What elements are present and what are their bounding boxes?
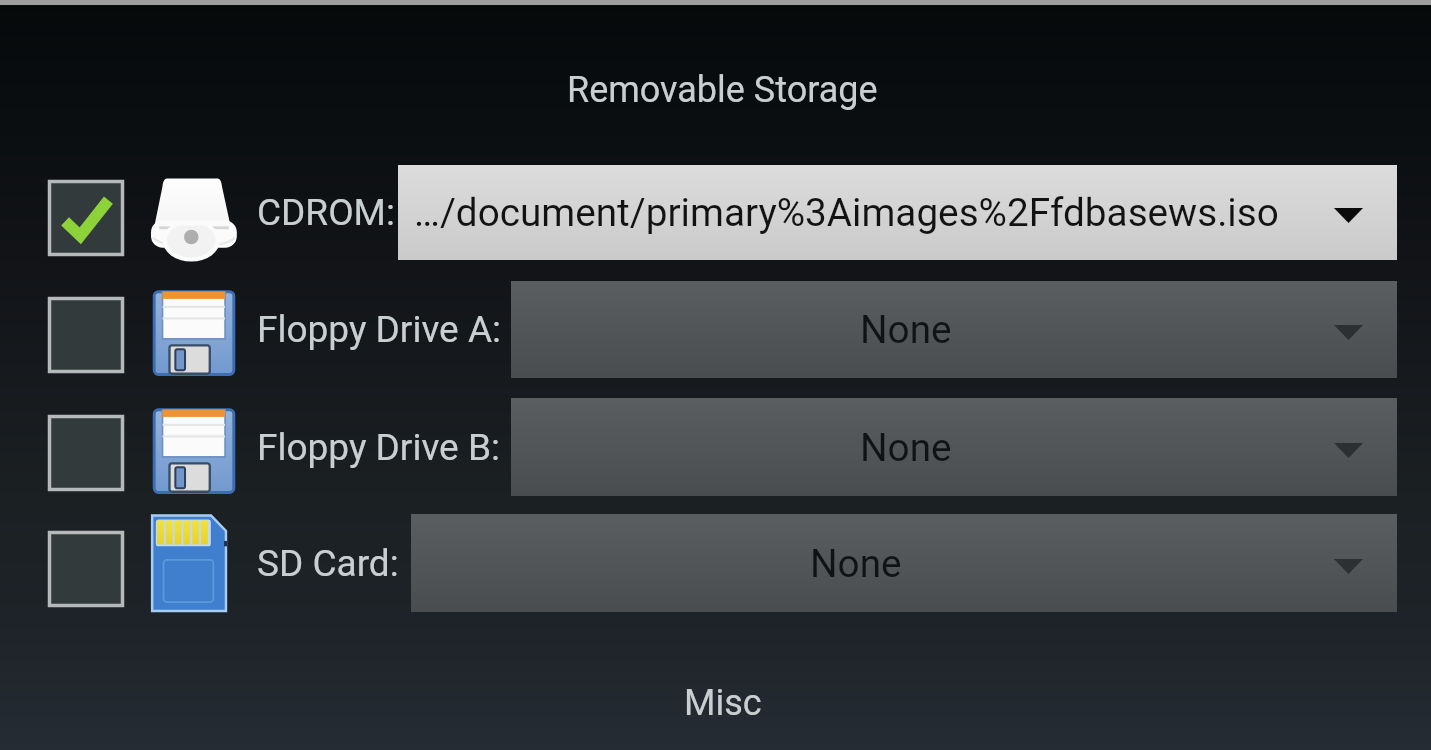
button[interactable]: None: [511, 281, 1397, 378]
button[interactable]: Enable SD Card:: [48, 531, 124, 607]
button[interactable]: Misc: [0, 655, 1431, 750]
button[interactable]: …/document/primary%3Aimages%2Ffdbasews.i…: [398, 165, 1397, 260]
staticText: Floppy Drive B:: [257, 426, 500, 469]
button[interactable]: None: [511, 398, 1397, 496]
other: Floppy disk: [152, 289, 236, 375]
other: SD card: [151, 515, 239, 613]
staticText: Removable Storage: [567, 69, 878, 111]
button[interactable]: Enable Floppy Drive A:: [48, 297, 124, 373]
other: CD-ROM drive: [151, 178, 237, 262]
staticText: Floppy Drive A:: [257, 308, 501, 351]
staticText: SD Card:: [257, 542, 399, 585]
staticText: Misc: [684, 682, 762, 724]
staticText: None: [860, 425, 952, 470]
staticText: None: [810, 541, 902, 586]
button[interactable]: None: [411, 514, 1397, 612]
button[interactable]: Enable CDROM:: [48, 180, 124, 256]
staticText: CDROM:: [257, 191, 395, 234]
button[interactable]: Enable Floppy Drive B:: [48, 415, 124, 491]
other: Floppy disk: [152, 407, 236, 493]
staticText: …/document/primary%3Aimages%2Ffdbasews.i…: [414, 190, 1279, 235]
staticText: None: [860, 307, 952, 352]
